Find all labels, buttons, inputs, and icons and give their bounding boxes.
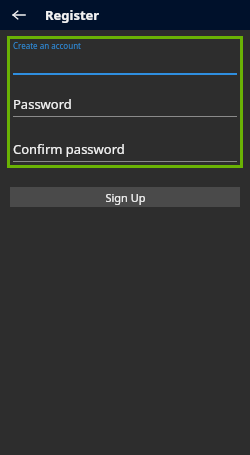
- button[interactable]: Password: [10, 95, 240, 117]
- staticText: Confirm password: [13, 140, 125, 158]
- button[interactable]: Sign Up: [10, 187, 240, 207]
- staticText: Register: [45, 6, 100, 24]
- button[interactable]: Back: [8, 4, 30, 26]
- staticText: Create an account: [13, 40, 81, 51]
- staticText: Sign Up: [105, 190, 146, 205]
- staticText: Password: [13, 95, 72, 113]
- button[interactable]: Confirm password: [10, 140, 240, 162]
- button[interactable]: Create an account: [10, 39, 240, 75]
